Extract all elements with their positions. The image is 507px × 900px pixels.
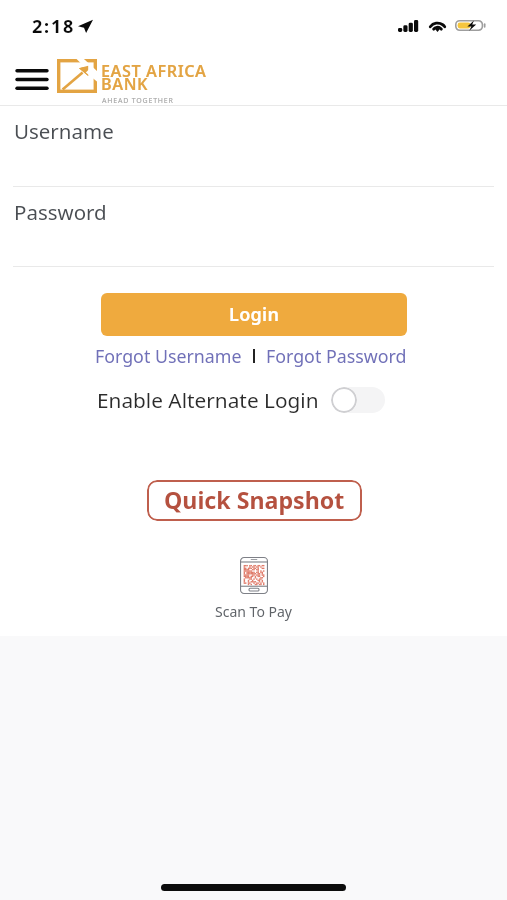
button[interactable]: Forgot Username (95, 342, 242, 370)
staticText: 2:18 (32, 14, 76, 39)
button[interactable]: Quick Snapshot (147, 480, 362, 521)
button[interactable]: Forgot Password (266, 342, 407, 370)
staticText: Forgot Password (266, 344, 407, 368)
staticText: AHEAD TOGETHER (102, 96, 174, 106)
staticText: Username (14, 117, 114, 145)
button[interactable]: Password (0, 187, 507, 267)
staticText: Forgot Username (95, 344, 242, 368)
staticText: Password (14, 198, 107, 226)
staticText: Quick Snapshot (164, 484, 345, 516)
staticText: EAST AFRICA (101, 60, 207, 82)
button[interactable]: Scan To Pay (215, 557, 292, 621)
button[interactable]: Menu (7, 59, 57, 99)
staticText: Login (229, 302, 280, 327)
staticText: BANK (101, 73, 149, 95)
button[interactable]: Login (101, 293, 407, 336)
button[interactable]: Username (0, 106, 507, 186)
button[interactable]: Enable Alternate Login toggle (331, 387, 385, 413)
staticText: Enable Alternate Login (97, 386, 319, 414)
staticText: Scan To Pay (215, 602, 292, 621)
